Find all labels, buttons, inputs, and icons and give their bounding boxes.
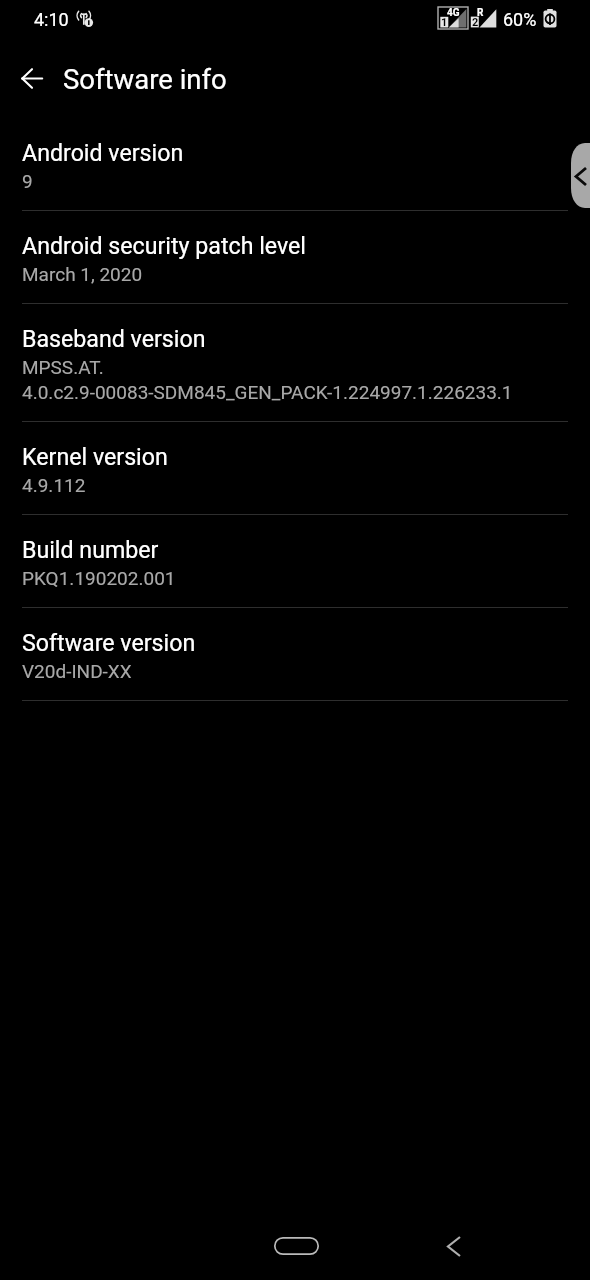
staticText: 4:10 bbox=[34, 9, 69, 30]
button[interactable]: Kernel version bbox=[0, 422, 590, 515]
staticText: 60% bbox=[503, 9, 537, 30]
button[interactable]: Android security patch level bbox=[0, 211, 590, 304]
button[interactable]: Back bbox=[432, 1228, 476, 1264]
staticText: 2 bbox=[472, 16, 479, 29]
staticText: Build number bbox=[22, 536, 159, 563]
staticText: 4G bbox=[447, 7, 460, 19]
staticText: V20d-IND-XX bbox=[22, 660, 132, 682]
staticText: 9 bbox=[22, 170, 33, 192]
staticText: Software info bbox=[63, 63, 227, 95]
button[interactable]: Software version bbox=[0, 608, 590, 701]
staticText: MPSS.AT. 4.0.c2.9-00083-SDM845_GEN_PACK-… bbox=[22, 356, 513, 403]
staticText: 4.9.112 bbox=[22, 474, 86, 496]
staticText: Kernel version bbox=[22, 443, 168, 470]
button[interactable]: Home bbox=[264, 1229, 329, 1263]
staticText: Software version bbox=[22, 629, 196, 656]
staticText: 1 bbox=[441, 16, 448, 29]
staticText: March 1, 2020 bbox=[22, 263, 143, 285]
staticText: R bbox=[477, 7, 484, 19]
staticText: PKQ1.190202.001 bbox=[22, 567, 176, 589]
button[interactable]: Back bbox=[10, 56, 54, 100]
button[interactable]: Baseband version bbox=[0, 304, 590, 422]
staticText: Android version bbox=[22, 139, 184, 166]
button[interactable]: Android version bbox=[0, 118, 590, 211]
button[interactable]: Edge panel bbox=[566, 143, 590, 208]
staticText: Baseband version bbox=[22, 325, 206, 352]
staticText: Android security patch level bbox=[22, 232, 307, 259]
button[interactable]: Build number bbox=[0, 515, 590, 608]
